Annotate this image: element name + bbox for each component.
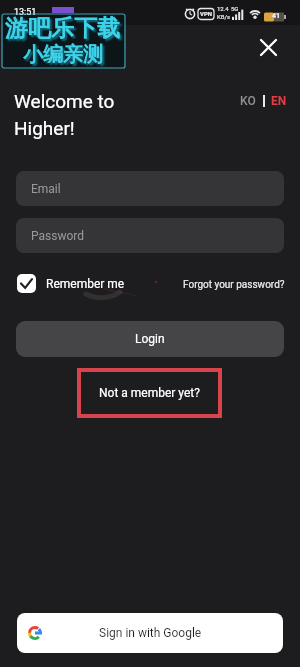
button[interactable]: Sign in with Google [17, 613, 283, 653]
button[interactable] [254, 33, 282, 61]
button[interactable]: Not a member yet? [77, 368, 222, 418]
staticText: 5G [231, 5, 239, 12]
staticText: VPN [200, 10, 213, 17]
staticText: Email [31, 182, 61, 196]
button[interactable]: KO [240, 93, 287, 109]
staticText: 游吧乐下载 [5, 14, 120, 43]
button[interactable]: Login [16, 321, 284, 357]
staticText: 13:51 [14, 7, 37, 18]
staticText: EN [271, 94, 287, 108]
staticText: 小编亲测 [23, 42, 103, 67]
staticText: KO [240, 94, 256, 108]
button[interactable]: Password [16, 218, 284, 253]
staticText: Login [135, 332, 165, 346]
button[interactable]: Remember me [17, 274, 125, 293]
staticText: Welcome to Higher! [14, 90, 115, 139]
staticText: Sign in with Google [99, 626, 202, 640]
staticText: 12.4 [217, 5, 229, 12]
button[interactable]: Email [16, 171, 284, 206]
staticText: 41 [272, 12, 281, 20]
staticText: Password [31, 229, 85, 243]
staticText: Not a member yet? [99, 386, 200, 400]
staticText: KB/s [217, 13, 231, 20]
button[interactable]: Forgot your password? [183, 279, 285, 291]
staticText: Remember me [46, 277, 125, 291]
